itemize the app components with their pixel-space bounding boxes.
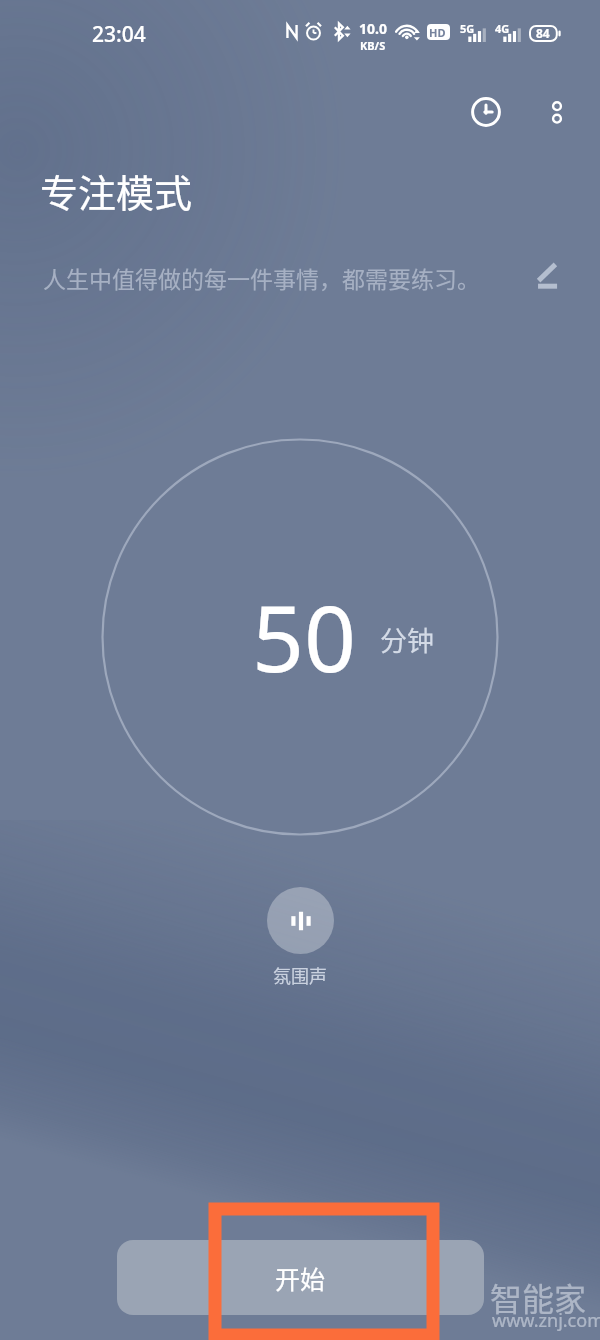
staticText: 50 <box>252 575 357 699</box>
button[interactable]: 历史记录 <box>462 88 510 136</box>
button[interactable]: 编辑 <box>527 255 567 295</box>
button[interactable]: 开始 <box>117 1240 484 1315</box>
staticText: HD <box>429 25 446 40</box>
staticText: 5G <box>460 21 475 36</box>
button[interactable]: 氛围声 <box>240 887 360 988</box>
staticText: 专注模式 <box>40 163 193 218</box>
staticText: 人生中值得做的每一件事情，都需要练习。 <box>43 261 480 294</box>
staticText: 10.0 <box>359 19 387 38</box>
staticText: 开始 <box>275 1260 326 1296</box>
staticText: 4G <box>495 21 510 36</box>
staticText: www.znj.com <box>492 1308 600 1333</box>
staticText: 智能家 <box>490 1274 587 1320</box>
staticText: 分钟 <box>380 620 434 659</box>
staticText: 23:04 <box>92 20 146 49</box>
staticText: KB/S <box>360 38 386 53</box>
staticText: 氛围声 <box>273 962 327 988</box>
button[interactable]: 更多选项 <box>533 91 581 139</box>
staticText: 84 <box>536 25 550 41</box>
